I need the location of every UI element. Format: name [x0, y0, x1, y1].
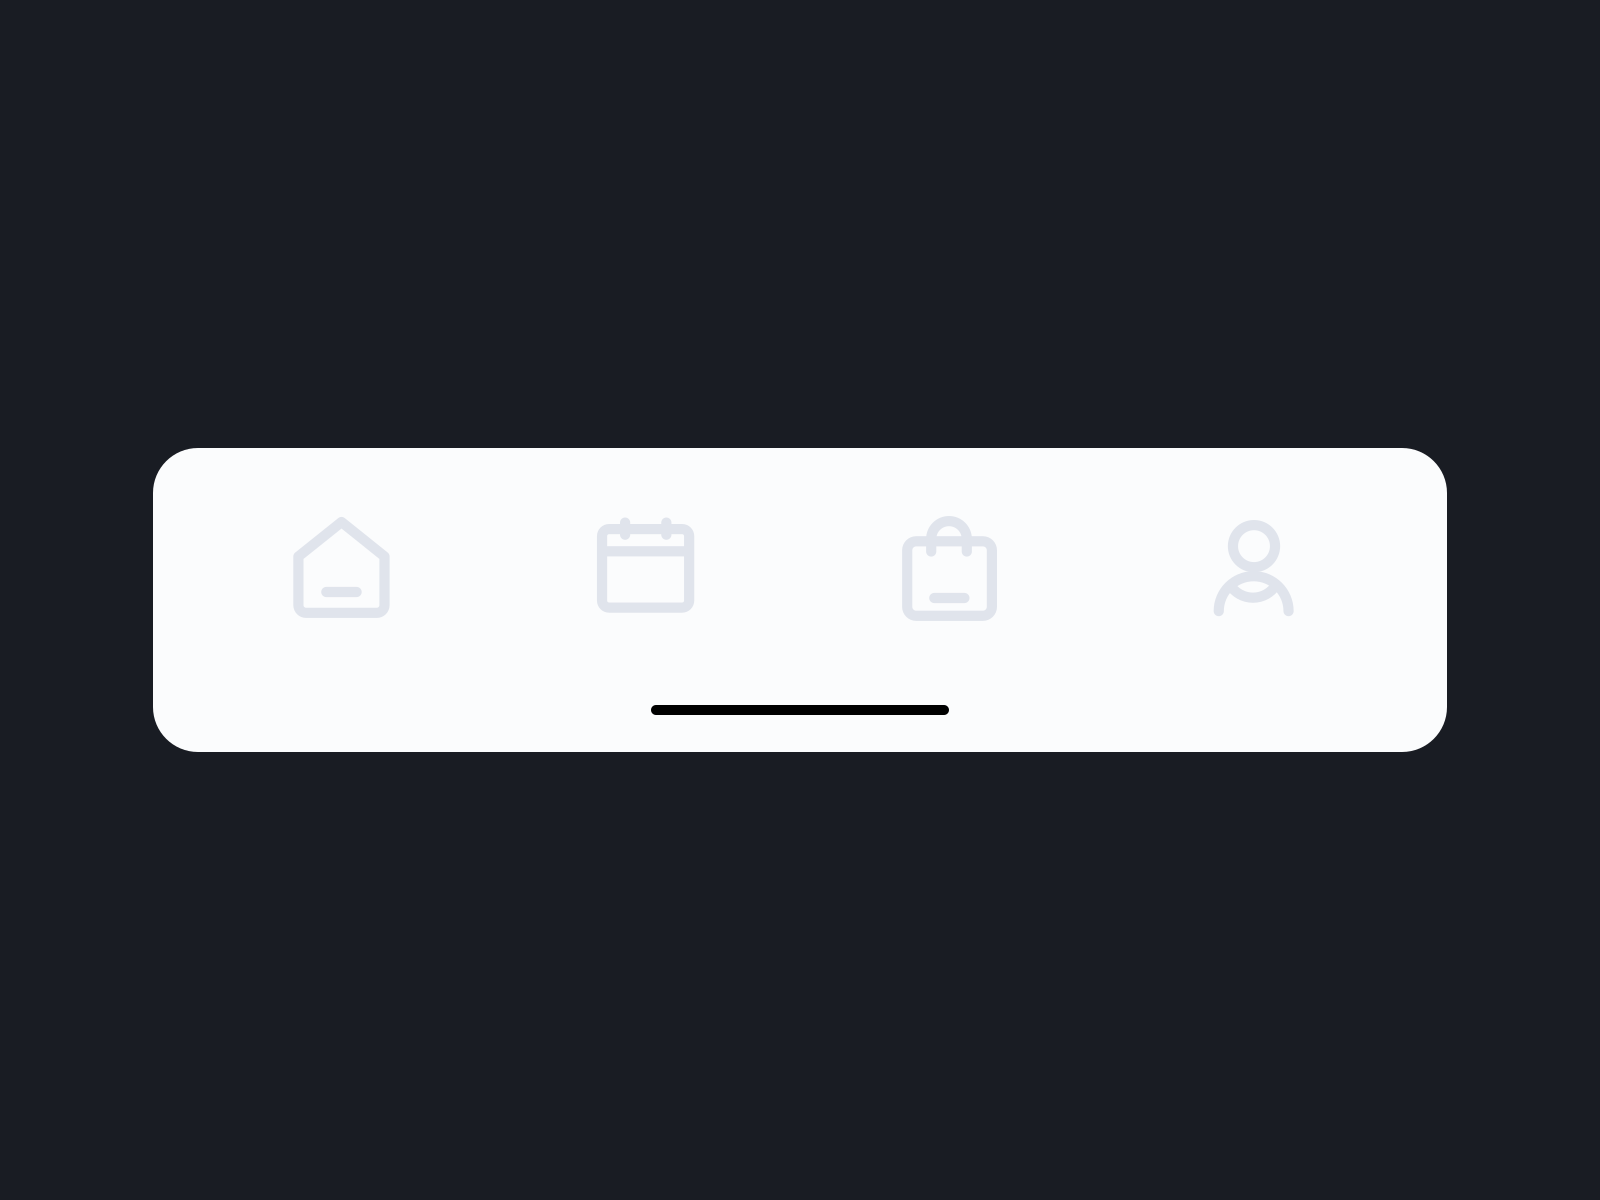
button[interactable]: Home	[281, 508, 401, 628]
button[interactable]: Shop	[890, 508, 1010, 628]
button[interactable]: Bookings	[586, 508, 706, 628]
button[interactable]: Profile	[1194, 508, 1314, 628]
